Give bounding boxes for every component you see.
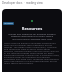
button[interactable]: Updated	[4, 22, 13, 25]
staticText: Resources	[2, 26, 62, 31]
staticText: Guides and reference for building modern…	[4, 32, 60, 41]
staticText: Updated	[4, 22, 13, 25]
staticText: Learn how the platform manages backgroun…	[4, 41, 60, 65]
button[interactable]: Developer docs · reading view	[2, 1, 43, 5]
